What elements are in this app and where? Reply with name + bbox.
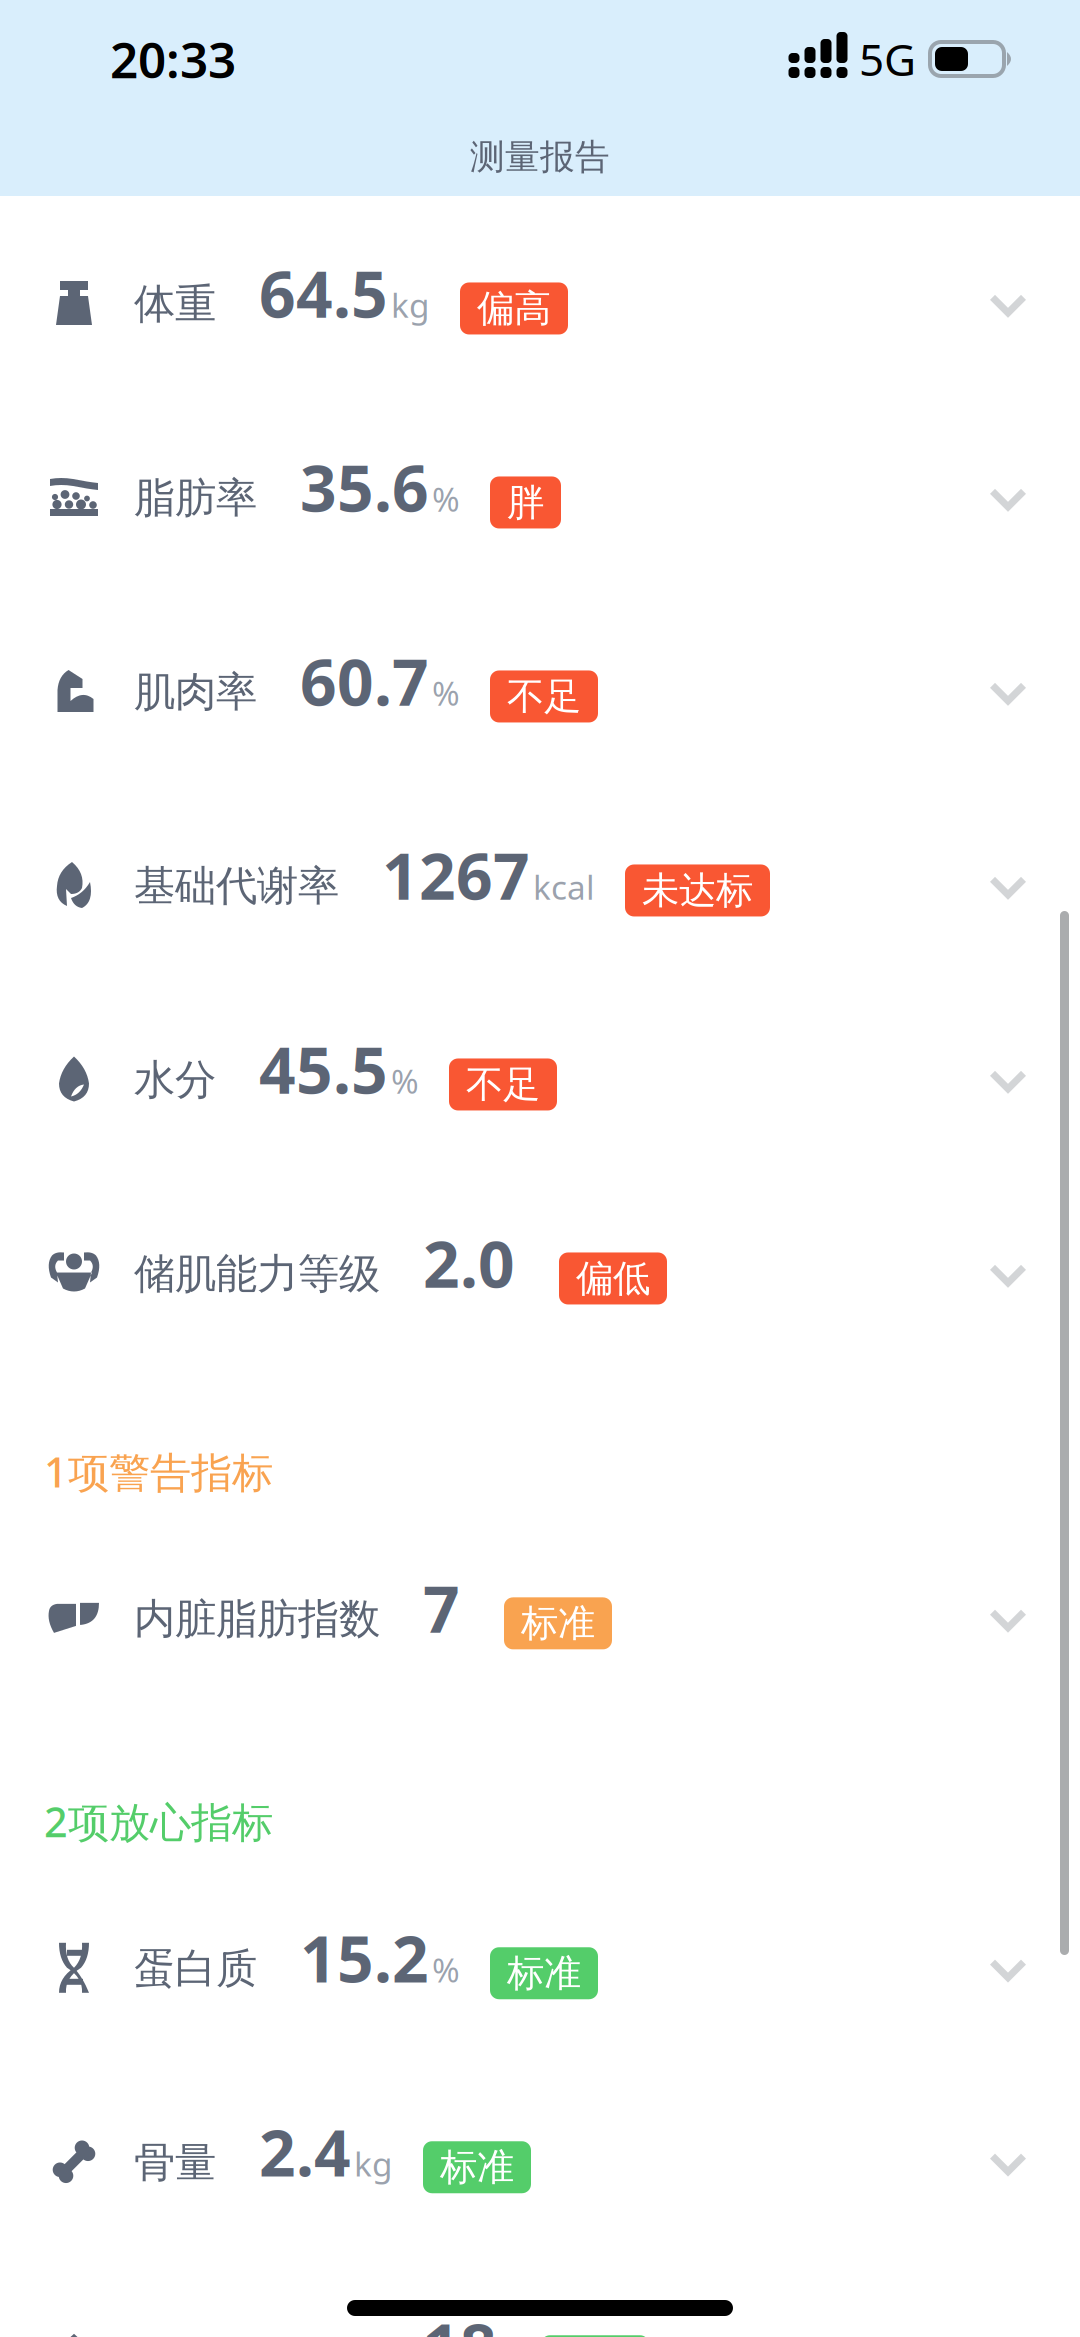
- staticText: 标准: [521, 1600, 595, 1646]
- staticText: kg: [354, 2141, 393, 2186]
- staticText: 60.7: [300, 638, 429, 723]
- staticText: 不足: [507, 673, 581, 719]
- staticText: 内脏脂肪指数: [134, 1594, 380, 1644]
- button[interactable]: 内脏脂肪指数: [0, 1511, 1080, 1705]
- staticText: 18: [423, 2303, 497, 2337]
- staticText: 标准: [507, 1950, 581, 1996]
- staticText: 2项放心指标: [44, 1794, 273, 1849]
- staticText: 不足: [466, 1061, 540, 1107]
- staticText: 测量报告: [470, 136, 610, 178]
- staticText: 20:33: [110, 26, 236, 92]
- staticText: 1项警告指标: [44, 1444, 273, 1499]
- staticText: 2.0: [423, 1220, 515, 1305]
- staticText: 肌肉率: [134, 667, 257, 717]
- staticText: %: [391, 1059, 419, 1103]
- staticText: %: [432, 671, 460, 715]
- staticText: 储肌能力等级: [134, 1249, 380, 1299]
- staticText: 蛋白质: [134, 1943, 257, 1994]
- staticText: 偏低: [576, 1255, 650, 1301]
- staticText: 偏高: [477, 285, 551, 331]
- staticText: 35.6: [300, 444, 429, 529]
- staticText: 5G: [859, 30, 916, 88]
- staticText: 15.2: [300, 1915, 429, 2000]
- staticText: 基础代谢率: [134, 861, 339, 911]
- staticText: 未达标: [642, 867, 753, 913]
- button[interactable]: 体重: [0, 196, 1080, 390]
- staticText: 脂肪率: [134, 473, 257, 523]
- button[interactable]: 水分: [0, 972, 1080, 1166]
- staticText: %: [432, 477, 460, 521]
- staticText: 标准: [440, 2144, 514, 2190]
- button[interactable]: 骨量: [0, 2055, 1080, 2249]
- staticText: 2.4: [259, 2109, 351, 2194]
- staticText: 体重: [134, 279, 216, 329]
- button[interactable]: 肌肉率: [0, 584, 1080, 778]
- staticText: %: [432, 1947, 460, 1992]
- button[interactable]: 基础代谢率: [0, 778, 1080, 972]
- staticText: kcal: [533, 865, 595, 909]
- staticText: 1267: [382, 832, 530, 917]
- staticText: 45.5: [259, 1026, 388, 1111]
- staticText: 骨量: [134, 2137, 216, 2188]
- button[interactable]: 脂肪率: [0, 390, 1080, 584]
- staticText: 水分: [134, 1055, 216, 1105]
- button[interactable]: 储肌能力等级: [0, 1166, 1080, 1360]
- staticText: 胖: [507, 479, 544, 525]
- button[interactable]: 身体热量控制: [0, 2249, 1080, 2337]
- staticText: kg: [391, 283, 430, 327]
- staticText: 64.5: [259, 250, 388, 335]
- staticText: 7: [423, 1565, 460, 1650]
- button[interactable]: 蛋白质: [0, 1861, 1080, 2055]
